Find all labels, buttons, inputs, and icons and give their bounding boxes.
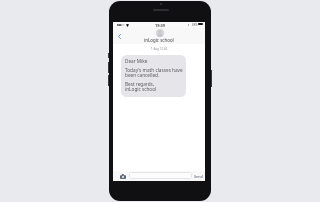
staticText: inLogic school: [144, 37, 174, 43]
staticText: 19:39: [155, 23, 165, 28]
button[interactable]: Dear Mike: [121, 55, 186, 97]
button[interactable]: Camera: [117, 172, 128, 180]
button[interactable]: Back: [115, 31, 124, 41]
staticText: been cancelled.: [125, 72, 160, 78]
staticText: Best regards,: [125, 81, 155, 87]
staticText: 88%: [192, 23, 198, 27]
staticText: Today's math classes have: [125, 67, 183, 73]
button[interactable]: [129, 172, 192, 179]
staticText: Dear Mike: [125, 58, 148, 64]
button[interactable]: Send: [193, 173, 204, 179]
staticText: 1 Aug 12:34: [113, 47, 205, 51]
staticText: Send: [194, 174, 203, 179]
staticText: inLogic school: [125, 86, 157, 92]
